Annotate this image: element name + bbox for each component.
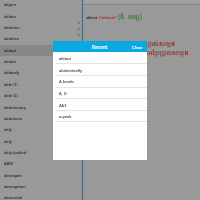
button[interactable]: ablative (0, 33, 76, 44)
staticText: ablazely (4, 70, 20, 75)
staticText: ablaut (4, 48, 17, 53)
staticText: a-peak (59, 114, 72, 119)
staticText: abnormal (4, 195, 23, 200)
staticText: ablutionary (4, 105, 27, 110)
button[interactable]: A, O (53, 87, 147, 99)
button[interactable]: ablate (0, 11, 76, 22)
staticText: ablaut (86, 15, 99, 20)
button[interactable]: ablaze (0, 56, 76, 67)
button[interactable]: A&E (53, 99, 147, 111)
staticText: ably-bodied (4, 150, 27, 155)
staticText: [ˈæblaʊt] (99, 15, 118, 20)
button[interactable]: ABM (0, 158, 76, 169)
staticText: abdominally (59, 68, 83, 73)
staticText: A-bomb (59, 79, 74, 84)
staticText: ABM (4, 161, 13, 166)
staticText: abnegation (4, 184, 26, 189)
button[interactable]: ably (0, 136, 76, 147)
staticText: (និ. ពាក្យ) (118, 12, 142, 20)
staticText: ការប្រែប្រួលសម្លេង (144, 48, 189, 56)
staticText: ablation (4, 25, 20, 30)
staticText: ៖ភ្លាស់សម្លេង (144, 39, 176, 47)
staticText: abnegate (4, 173, 22, 178)
button[interactable]: a-peak (53, 110, 147, 122)
button[interactable]: ably (0, 124, 76, 135)
staticText: ably (4, 127, 12, 132)
button[interactable]: ablation (0, 22, 76, 33)
button[interactable]: ably-bodied (0, 147, 76, 158)
staticText: ablutions (4, 116, 22, 121)
staticText: ably (4, 139, 12, 144)
staticText: ablaut (59, 56, 72, 61)
button[interactable]: able (2) (0, 90, 76, 101)
button[interactable]: able (1) (0, 79, 76, 90)
button[interactable]: abnormal (0, 192, 76, 200)
staticText: ablative (4, 36, 20, 41)
button[interactable]: ablutions (0, 113, 76, 124)
button[interactable]: abnegate (0, 170, 76, 181)
button[interactable]: Clear (128, 44, 147, 50)
button[interactable]: abjure (0, 0, 76, 10)
staticText: abjure (4, 2, 17, 7)
staticText: able (2) (4, 93, 18, 98)
staticText: ablaze (4, 59, 17, 64)
staticText: A, O (59, 91, 67, 96)
button[interactable]: ablaut (53, 52, 147, 64)
button[interactable]: ablazely (0, 67, 76, 78)
staticText: able (1) (4, 82, 18, 87)
button[interactable]: A-bomb (53, 75, 147, 87)
button[interactable]: ablutionary (0, 102, 76, 113)
staticText: ablate (4, 14, 16, 19)
button[interactable]: abnegation (0, 181, 76, 192)
staticText: A&E (59, 103, 67, 108)
button[interactable]: abdominally (53, 64, 147, 76)
button[interactable]: ablaut (0, 45, 76, 56)
staticText: Recent (92, 44, 108, 50)
staticText: Clear (132, 44, 143, 50)
